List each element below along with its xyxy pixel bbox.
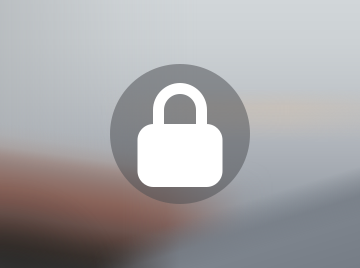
button[interactable]: Locked [110,64,250,204]
